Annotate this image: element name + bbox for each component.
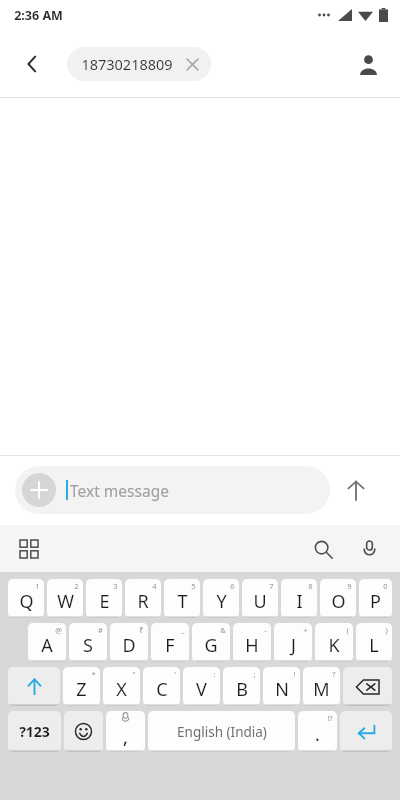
staticText: 9 xyxy=(347,581,352,591)
button[interactable]: 3 xyxy=(86,579,122,618)
button[interactable]: 7 xyxy=(242,579,278,618)
button[interactable]: Shift xyxy=(8,667,60,706)
staticText: W xyxy=(57,589,74,614)
staticText: " xyxy=(132,669,136,679)
button[interactable]: 2 xyxy=(47,579,83,618)
staticText: & xyxy=(220,625,226,635)
staticText: G xyxy=(204,633,218,658)
button[interactable]: ; xyxy=(223,667,260,706)
button[interactable]: 8 xyxy=(281,579,317,618)
staticText: X xyxy=(116,677,127,702)
button[interactable]: ₹ xyxy=(110,623,148,662)
button[interactable]: _ xyxy=(151,623,189,662)
button[interactable]: Add attachment xyxy=(22,473,56,507)
staticText: R xyxy=(137,589,149,614)
button[interactable]: ' xyxy=(143,667,180,706)
staticText: 3 xyxy=(113,581,118,591)
staticText: A xyxy=(41,633,53,658)
staticText: _ xyxy=(181,625,185,635)
staticText: J xyxy=(291,633,296,658)
staticText: ) xyxy=(385,625,388,635)
staticText: ?123 xyxy=(19,722,50,741)
staticText: N xyxy=(275,677,289,702)
staticText: ; xyxy=(253,669,256,679)
staticText: * xyxy=(91,669,96,679)
button[interactable]: " xyxy=(103,667,140,706)
staticText: ? xyxy=(332,669,336,679)
button[interactable]: 9 xyxy=(320,579,356,618)
button[interactable]: & xyxy=(192,623,230,662)
button[interactable]: ⁉ xyxy=(298,711,337,752)
button[interactable]: Add attachment xyxy=(15,466,330,514)
button[interactable]: Search xyxy=(306,532,340,566)
staticText: 2 xyxy=(74,581,79,591)
staticText: E xyxy=(99,589,110,614)
staticText: 8 xyxy=(308,581,313,591)
staticText: M xyxy=(313,677,330,702)
staticText: C xyxy=(156,677,168,702)
staticText: 2:36 AM xyxy=(14,7,63,24)
button[interactable]: 5 xyxy=(164,579,200,618)
staticText: 6 xyxy=(230,581,235,591)
staticText: S xyxy=(83,633,93,658)
staticText: O xyxy=(331,589,346,614)
staticText: K xyxy=(328,633,340,658)
button[interactable]: @ xyxy=(28,623,66,662)
staticText: + xyxy=(303,625,308,635)
staticText: Z xyxy=(76,677,87,702)
staticText: ! xyxy=(293,669,296,679)
button[interactable]: * xyxy=(63,667,100,706)
staticText: English (India) xyxy=(177,723,267,741)
staticText: . xyxy=(315,722,320,747)
staticText: : xyxy=(213,669,216,679)
button[interactable]: , xyxy=(106,711,145,752)
staticText: Text message xyxy=(70,480,169,501)
button[interactable]: ! xyxy=(263,667,300,706)
staticText: I xyxy=(296,589,303,614)
button[interactable]: Back xyxy=(12,44,52,84)
button[interactable]: 6 xyxy=(203,579,239,618)
button[interactable]: # xyxy=(69,623,107,662)
button[interactable]: + xyxy=(274,623,312,662)
button[interactable]: 18730218809 xyxy=(67,47,211,81)
button[interactable]: 4 xyxy=(125,579,161,618)
button[interactable]: Voice input xyxy=(352,532,386,566)
button[interactable]: ) xyxy=(356,623,392,662)
staticText: 0 xyxy=(383,581,388,591)
button[interactable]: Send xyxy=(336,470,376,510)
staticText: U xyxy=(253,589,267,614)
button[interactable]: Emoji xyxy=(64,711,103,752)
button[interactable]: - xyxy=(233,623,271,662)
staticText: ( xyxy=(346,625,349,635)
button[interactable]: Remove recipient xyxy=(181,53,203,75)
button[interactable]: 0 xyxy=(359,579,392,618)
staticText: ' xyxy=(174,669,176,679)
staticText: 7 xyxy=(269,581,274,591)
staticText: P xyxy=(370,589,381,614)
button[interactable]: ? xyxy=(303,667,340,706)
button[interactable]: English (India) xyxy=(148,711,295,752)
button[interactable]: ?123 xyxy=(8,711,61,752)
button[interactable]: ( xyxy=(315,623,353,662)
staticText: D xyxy=(122,633,136,658)
staticText: 1 xyxy=(35,581,40,591)
staticText: Q xyxy=(19,589,34,614)
staticText: L xyxy=(369,633,379,658)
staticText: T xyxy=(177,589,188,614)
staticText: Y xyxy=(216,589,227,614)
staticText: V xyxy=(196,677,207,702)
button[interactable]: Keyboard options xyxy=(12,532,46,566)
staticText: @ xyxy=(55,625,62,635)
button[interactable]: Enter xyxy=(340,711,392,752)
button[interactable]: Delete xyxy=(343,667,392,706)
staticText: - xyxy=(264,625,267,635)
staticText: 4 xyxy=(152,581,157,591)
button[interactable]: Contacts xyxy=(348,44,388,84)
button[interactable]: : xyxy=(183,667,220,706)
staticText: 5 xyxy=(191,581,196,591)
staticText: ₹ xyxy=(139,625,144,635)
staticText: , xyxy=(123,725,128,750)
button[interactable]: 1 xyxy=(8,579,44,618)
staticText: H xyxy=(245,633,259,658)
staticText: F xyxy=(165,633,175,658)
